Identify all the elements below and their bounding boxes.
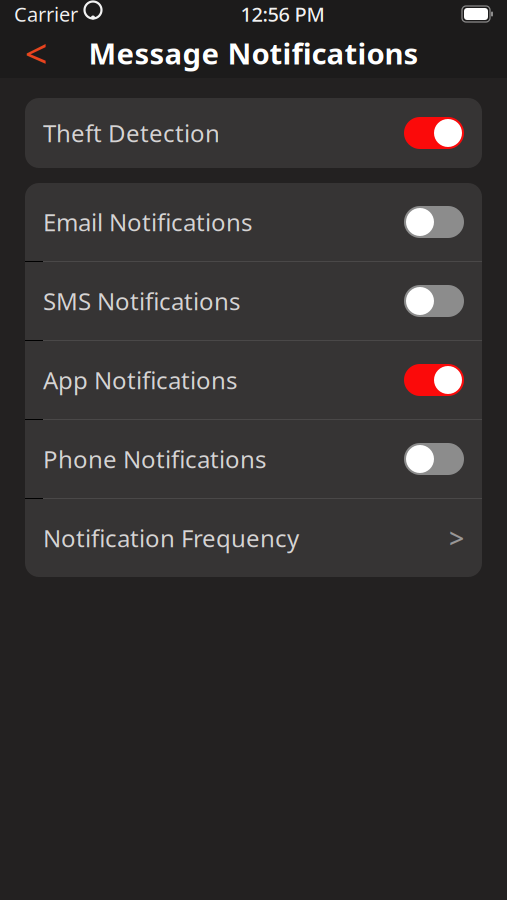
button[interactable]: Back: [14, 31, 58, 75]
staticText: Message Notifications: [88, 33, 418, 72]
staticText: Carrier: [14, 1, 78, 27]
button[interactable]: Theft Detection: [25, 98, 482, 168]
staticText: Notification Frequency: [43, 522, 299, 554]
staticText: Phone Notifications: [43, 443, 266, 475]
staticText: SMS Notifications: [43, 285, 240, 317]
button[interactable]: SMS Notifications: [25, 262, 482, 340]
staticText: App Notifications: [43, 364, 237, 396]
staticText: Email Notifications: [43, 206, 252, 238]
button[interactable]: Phone Notifications: [25, 420, 482, 498]
staticText: [78, 1, 83, 27]
button[interactable]: Notification Frequency: [25, 499, 482, 577]
staticText: <: [24, 26, 47, 79]
button[interactable]: Email Notifications: [25, 183, 482, 261]
staticText: 12:56 PM: [240, 1, 324, 27]
staticText: Theft Detection: [43, 117, 220, 149]
staticText: >: [449, 520, 464, 556]
button[interactable]: App Notifications: [25, 341, 482, 419]
